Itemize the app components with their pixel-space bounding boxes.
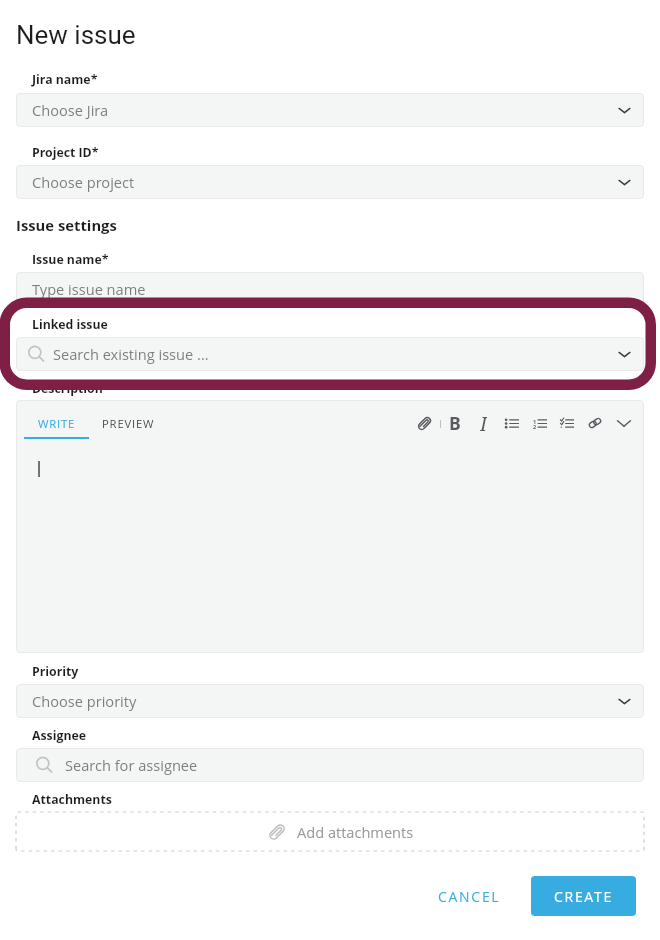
button[interactable]: CREATE <box>531 876 636 916</box>
staticText: Choose project <box>32 172 135 192</box>
button[interactable]: Type issue name <box>16 272 644 306</box>
button[interactable]: Numbered list <box>530 413 550 433</box>
button[interactable]: Choose project <box>16 165 644 199</box>
button[interactable]: Italic <box>473 413 493 433</box>
staticText: 1 <box>533 418 537 426</box>
button[interactable]: Bulleted list <box>502 413 522 433</box>
staticText: Issue name* <box>32 251 109 268</box>
staticText: New issue <box>16 20 136 50</box>
button[interactable]: CANCEL <box>423 876 515 916</box>
staticText: Search existing issue ... <box>53 344 209 364</box>
staticText: Description <box>32 380 103 397</box>
staticText: Priority <box>32 663 79 680</box>
staticText: CREATE <box>554 887 613 906</box>
button[interactable]: Choose Jira <box>16 93 644 127</box>
button[interactable]: More options <box>614 413 634 433</box>
button[interactable]: Search for assignee <box>16 748 644 782</box>
button[interactable]: Attach file <box>414 413 434 433</box>
staticText: Linked issue <box>32 316 108 333</box>
button[interactable]: PREVIEW <box>95 400 161 439</box>
staticText: 2 <box>533 423 537 431</box>
staticText: B <box>449 411 461 431</box>
staticText: PREVIEW <box>102 416 155 431</box>
staticText: Search for assignee <box>65 755 198 775</box>
button[interactable]: Insert link <box>585 413 605 433</box>
staticText: Assignee <box>32 727 87 744</box>
staticText: Choose priority <box>32 691 137 711</box>
staticText: Type issue name <box>32 279 146 299</box>
button[interactable]: Add attachments <box>16 812 644 851</box>
staticText: Issue settings <box>16 215 117 235</box>
button[interactable]: WRITE <box>24 400 89 439</box>
staticText: WRITE <box>38 416 76 431</box>
button[interactable]: Bold <box>445 413 465 433</box>
staticText: Attachments <box>32 791 112 808</box>
button[interactable]: Search existing issue ... <box>16 337 644 371</box>
button[interactable]: Choose priority <box>16 684 644 718</box>
button[interactable]: Checklist <box>557 413 577 433</box>
staticText: CANCEL <box>438 887 501 906</box>
staticText: Choose Jira <box>32 100 109 120</box>
staticText: I <box>480 411 487 431</box>
staticText: Project ID* <box>32 144 99 161</box>
staticText: Add attachments <box>297 822 414 842</box>
staticText: Jira name* <box>32 71 98 88</box>
